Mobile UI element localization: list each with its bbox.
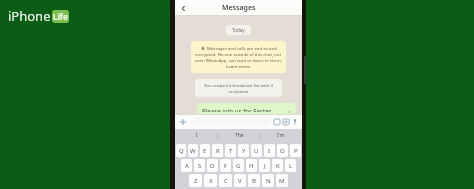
button[interactable]: I'm: [260, 129, 302, 142]
button[interactable]: U: [251, 144, 262, 157]
button[interactable]: Voice message: [290, 117, 299, 126]
staticText: You created a broadcast list with 4 reci…: [199, 82, 278, 94]
staticText: Today: [232, 27, 245, 33]
staticText: B: [252, 177, 256, 185]
button[interactable]: S: [194, 159, 205, 172]
button[interactable]: D: [207, 159, 218, 172]
staticText: I'm: [277, 132, 285, 139]
button[interactable]: J: [259, 159, 270, 172]
staticText: O: [280, 147, 285, 155]
staticText: The: [235, 132, 244, 139]
staticText: even WhatsApp, can read or listen to the…: [195, 57, 282, 63]
button[interactable]: Sticker: [272, 117, 281, 126]
button[interactable]: K: [272, 159, 283, 172]
staticText: S: [198, 162, 202, 170]
staticText: Messages and calls are end-to-end: [207, 45, 277, 51]
staticText: H: [249, 162, 254, 170]
staticText: Please join us for Easter breakfast: [202, 107, 292, 112]
staticText: E: [203, 147, 207, 155]
staticText: V: [238, 177, 242, 185]
staticText: R: [216, 147, 220, 155]
staticText: X: [209, 177, 213, 185]
staticText: J: [264, 162, 266, 170]
staticText: I: [196, 132, 198, 139]
button[interactable]: Attach: [178, 117, 188, 127]
staticText: iPhone: [8, 7, 51, 25]
button[interactable]: N: [262, 174, 274, 187]
staticText: T: [229, 147, 233, 155]
button[interactable]: R: [212, 144, 223, 157]
button[interactable]: Z: [189, 174, 202, 187]
button[interactable]: H: [246, 159, 257, 172]
staticText: Y: [242, 147, 246, 155]
button[interactable]: V: [234, 174, 246, 187]
button[interactable]: Q: [176, 144, 186, 157]
button[interactable]: P: [290, 144, 301, 157]
button[interactable]: A: [181, 159, 192, 172]
staticText: Messages: [222, 3, 256, 13]
button[interactable]: The: [218, 129, 260, 142]
staticText: Life: [53, 11, 68, 22]
button[interactable]: I: [175, 129, 218, 142]
staticText: D: [210, 162, 215, 170]
staticText: A: [185, 162, 189, 170]
button[interactable]: Y: [238, 144, 249, 157]
staticText: K: [276, 162, 280, 170]
button[interactable]: Please join us for Easter breakfast: [197, 103, 296, 114]
button[interactable]: I: [264, 144, 275, 157]
button[interactable]: M: [276, 174, 288, 187]
staticText: Learn more.: [226, 63, 251, 69]
button[interactable]: T: [225, 144, 236, 157]
button[interactable]: Camera: [281, 117, 290, 126]
button[interactable]: W: [188, 144, 198, 157]
button[interactable]: Messages and calls are end-to-end: [191, 41, 286, 73]
staticText: G: [236, 162, 241, 170]
staticText: M: [279, 177, 285, 185]
button[interactable]: C: [219, 174, 232, 187]
staticText: W: [190, 147, 196, 155]
staticText: L: [289, 162, 293, 170]
staticText: Q: [179, 147, 184, 155]
staticText: F: [224, 162, 228, 170]
staticText: encrypted. No one outside of this chat, …: [195, 51, 282, 57]
staticText: U: [254, 147, 259, 155]
button[interactable]: O: [277, 144, 288, 157]
button[interactable]: B: [248, 174, 260, 187]
staticText: I: [268, 147, 271, 155]
staticText: C: [224, 177, 228, 185]
button[interactable]: F: [220, 159, 231, 172]
button[interactable]: G: [233, 159, 244, 172]
button[interactable]: E: [200, 144, 210, 157]
button[interactable]: X: [204, 174, 217, 187]
staticText: Z: [194, 177, 198, 185]
staticText: P: [294, 147, 298, 155]
button[interactable]: Back: [177, 2, 189, 14]
staticText: N: [266, 177, 271, 185]
button[interactable]: L: [285, 159, 296, 172]
